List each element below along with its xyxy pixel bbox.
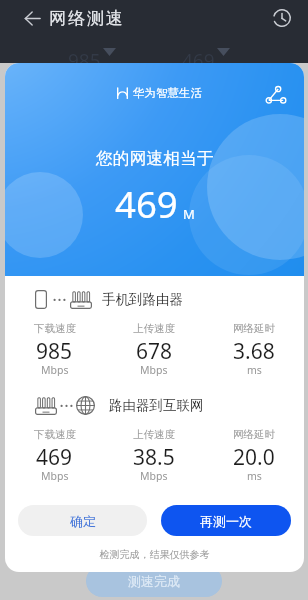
button[interactable]: Share (262, 81, 290, 109)
staticText: ms (247, 469, 262, 482)
button[interactable]: 测速完成 (86, 565, 222, 597)
staticText: Mbps (41, 469, 69, 482)
staticText: 测速完成 (128, 573, 180, 589)
staticText: 469 (182, 48, 215, 74)
staticText: 469 (36, 443, 73, 465)
button[interactable]: Back (19, 5, 45, 31)
staticText: 469 (115, 179, 178, 229)
button[interactable]: History (267, 3, 297, 33)
button[interactable]: 再测一次 (161, 505, 291, 536)
staticText: Mbps (140, 363, 168, 376)
staticText: 您的网速相当于 (96, 148, 214, 169)
staticText: 985 (68, 48, 101, 74)
staticText: 上传速度 (133, 428, 175, 441)
staticText: M (183, 205, 195, 223)
staticText: 下载速度 (34, 322, 76, 335)
staticText: 上传速度 (133, 322, 175, 335)
staticText: 网络延时 (233, 428, 275, 441)
staticText: 20.0 (233, 443, 275, 465)
staticText: 678 (136, 337, 173, 359)
staticText: ms (247, 363, 262, 376)
staticText: 华为智慧生活 (133, 86, 202, 100)
staticText: 下载速度 (34, 428, 76, 441)
staticText: 确定 (70, 513, 96, 529)
staticText: 38.5 (133, 443, 175, 465)
staticText: Mbps (41, 363, 69, 376)
staticText: 手机到路由器 (102, 291, 183, 308)
staticText: 检测完成，结果仅供参考 (5, 548, 304, 561)
staticText: 网络测速 (48, 8, 124, 29)
staticText: Mbps (140, 469, 168, 482)
staticText: 再测一次 (200, 513, 252, 529)
staticText: 网络延时 (233, 322, 275, 335)
staticText: 路由器到互联网 (109, 397, 204, 414)
staticText: 3.68 (233, 337, 275, 359)
button[interactable]: 确定 (18, 505, 147, 536)
staticText: 985 (36, 337, 73, 359)
